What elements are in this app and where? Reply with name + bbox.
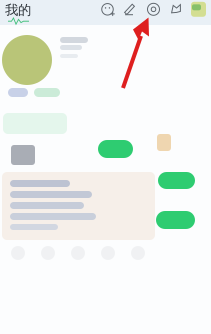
button[interactable]: Share (168, 1, 185, 18)
button[interactable]: Profile (191, 2, 206, 17)
button[interactable]: Tool (123, 243, 153, 263)
button[interactable]: Tool (63, 243, 93, 263)
staticText: 我的 (5, 2, 31, 18)
button[interactable]: Compose (122, 1, 139, 18)
button[interactable]: Action (158, 172, 195, 189)
button[interactable]: Tool (93, 243, 123, 263)
button[interactable]: Action (98, 140, 133, 158)
button[interactable]: Discover (145, 1, 162, 18)
button[interactable]: Add friend (99, 1, 116, 18)
button[interactable]: Action (156, 211, 195, 229)
button[interactable]: Tool (3, 243, 33, 263)
button[interactable]: Tool (33, 243, 63, 263)
